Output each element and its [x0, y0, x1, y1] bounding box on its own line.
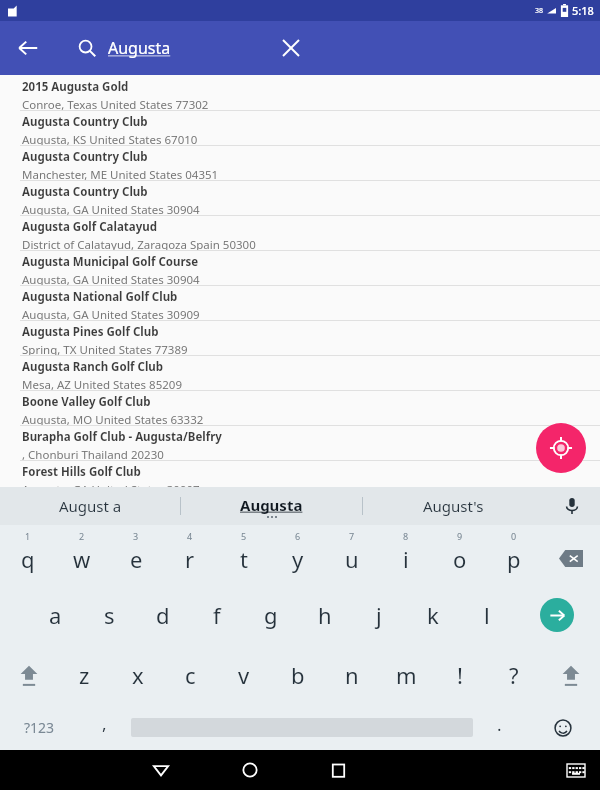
- staticText: Augusta Golf Calatayud: [22, 219, 157, 235]
- staticText: ?123: [24, 718, 55, 737]
- button[interactable]: Switch keyboard: [552, 750, 600, 790]
- button[interactable]: Shift: [541, 645, 600, 705]
- button[interactable]: Augusta Municipal Golf Course: [0, 250, 600, 285]
- staticText: 6: [295, 530, 301, 542]
- button[interactable]: Recent apps: [294, 750, 383, 790]
- staticText: August a: [59, 496, 122, 516]
- button[interactable]: !: [433, 645, 487, 705]
- staticText: .: [497, 713, 502, 736]
- button[interactable]: Augusta: [181, 487, 362, 525]
- button[interactable]: Augusta Country Club: [0, 145, 600, 180]
- button[interactable]: Back: [116, 750, 205, 790]
- button[interactable]: b: [271, 645, 325, 705]
- staticText: e: [130, 544, 143, 574]
- staticText: u: [345, 544, 359, 574]
- staticText: 0: [511, 530, 517, 542]
- button[interactable]: Augusta Ranch Golf Club: [0, 355, 600, 390]
- staticText: Augusta, GA United States 30909: [22, 307, 200, 320]
- button[interactable]: 6: [271, 525, 325, 585]
- staticText: 2: [79, 530, 85, 542]
- button[interactable]: k: [406, 585, 460, 645]
- button[interactable]: ?: [487, 645, 541, 705]
- staticText: Augusta National Golf Club: [22, 289, 178, 305]
- button[interactable]: Backspace: [541, 525, 600, 585]
- button[interactable]: z: [58, 645, 111, 705]
- staticText: Augusta Country Club: [22, 114, 148, 130]
- button[interactable]: 1: [0, 525, 55, 585]
- staticText: d: [156, 600, 170, 630]
- staticText: w: [73, 544, 91, 574]
- button[interactable]: g: [244, 585, 298, 645]
- button[interactable]: Augusta Country Club: [0, 180, 600, 215]
- button[interactable]: Augusta National Golf Club: [0, 285, 600, 320]
- staticText: p: [507, 544, 521, 574]
- staticText: l: [484, 600, 490, 630]
- button[interactable]: Burapha Golf Club - Augusta/Belfry: [0, 425, 600, 460]
- button[interactable]: 7: [325, 525, 379, 585]
- staticText: 5:18: [572, 3, 594, 18]
- staticText: i: [403, 544, 409, 574]
- staticText: Mesa, AZ United States 85209: [22, 377, 182, 390]
- button[interactable]: 3: [109, 525, 163, 585]
- button[interactable]: v: [217, 645, 271, 705]
- staticText: Boone Valley Golf Club: [22, 394, 151, 410]
- button[interactable]: Clear search: [270, 27, 312, 69]
- button[interactable]: Enter: [514, 585, 600, 645]
- button[interactable]: c: [164, 645, 217, 705]
- staticText: 8: [403, 530, 409, 542]
- button[interactable]: Home: [205, 750, 294, 790]
- staticText: Augusta, KS United States 67010: [22, 132, 198, 145]
- staticText: District of Calatayud, Zaragoza Spain 50…: [22, 237, 256, 250]
- button[interactable]: August's: [363, 487, 544, 525]
- staticText: ?: [509, 660, 519, 690]
- button[interactable]: .: [473, 705, 526, 750]
- button[interactable]: n: [325, 645, 379, 705]
- button[interactable]: 2015 Augusta Gold: [0, 75, 600, 110]
- staticText: 9: [457, 530, 463, 542]
- button[interactable]: Forest Hills Golf Club: [0, 460, 600, 487]
- button[interactable]: August a: [0, 487, 180, 525]
- button[interactable]: Augusta Pines Golf Club: [0, 320, 600, 355]
- button[interactable]: Voice input: [544, 487, 600, 525]
- button[interactable]: m: [379, 645, 433, 705]
- staticText: o: [453, 544, 467, 574]
- button[interactable]: f: [190, 585, 244, 645]
- button[interactable]: Shift: [0, 645, 58, 705]
- button[interactable]: My location: [536, 423, 586, 473]
- button[interactable]: 2: [55, 525, 109, 585]
- button[interactable]: h: [298, 585, 352, 645]
- button[interactable]: a: [28, 585, 82, 645]
- staticText: g: [264, 600, 278, 630]
- staticText: !: [457, 660, 463, 690]
- staticText: Augusta, GA United States 30904: [22, 272, 200, 285]
- staticText: Augusta Country Club: [22, 149, 148, 165]
- button[interactable]: l: [460, 585, 514, 645]
- button[interactable]: x: [111, 645, 164, 705]
- button[interactable]: Augusta Golf Calatayud: [0, 215, 600, 250]
- staticText: s: [104, 600, 115, 630]
- staticText: Augusta Ranch Golf Club: [22, 359, 164, 375]
- button[interactable]: 0: [487, 525, 541, 585]
- staticText: 7: [349, 530, 355, 542]
- button[interactable]: Boone Valley Golf Club: [0, 390, 600, 425]
- button[interactable]: j: [352, 585, 406, 645]
- button[interactable]: 4: [163, 525, 217, 585]
- staticText: Augusta, GA United States 30907: [22, 482, 200, 487]
- staticText: August's: [423, 496, 484, 516]
- button[interactable]: 8: [379, 525, 433, 585]
- staticText: h: [318, 600, 332, 630]
- staticText: 5: [241, 530, 247, 542]
- button[interactable]: Back: [8, 28, 48, 68]
- staticText: Conroe, Texas United States 77302: [22, 97, 209, 110]
- button[interactable]: d: [136, 585, 190, 645]
- button[interactable]: 5: [217, 525, 271, 585]
- staticText: v: [238, 660, 250, 690]
- button[interactable]: ,: [78, 705, 131, 750]
- button[interactable]: ?123: [0, 705, 78, 750]
- button[interactable]: Emoji: [526, 705, 600, 750]
- staticText: ,: [102, 712, 107, 735]
- button[interactable]: 9: [433, 525, 487, 585]
- button[interactable]: s: [82, 585, 136, 645]
- button[interactable]: Augusta Country Club: [0, 110, 600, 145]
